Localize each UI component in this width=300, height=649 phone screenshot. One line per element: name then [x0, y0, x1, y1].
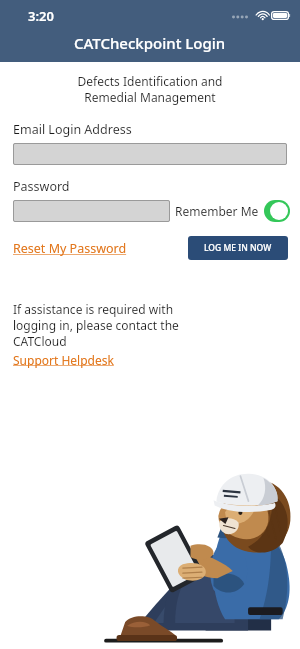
staticText: LOG ME IN NOW [204, 242, 272, 254]
staticText: Email Login Address [13, 121, 132, 138]
staticText: 3:20 [28, 7, 54, 25]
button[interactable] [13, 143, 287, 165]
staticText: CATCheckpoint Login [74, 33, 226, 53]
button[interactable]: Support Helpdesk [13, 352, 114, 368]
button[interactable]: Remember Me [175, 200, 290, 222]
other: Lion mascot with tablet [106, 463, 298, 649]
button[interactable]: LOG ME IN NOW [188, 236, 288, 260]
button[interactable]: Reset My Password [13, 240, 127, 257]
staticText: If assistance is required with logging i… [13, 301, 179, 349]
button[interactable] [13, 200, 170, 222]
staticText: Password [13, 178, 70, 195]
staticText: Defects Identification and Remedial Mana… [0, 73, 300, 105]
staticText: Remember Me [175, 203, 259, 219]
